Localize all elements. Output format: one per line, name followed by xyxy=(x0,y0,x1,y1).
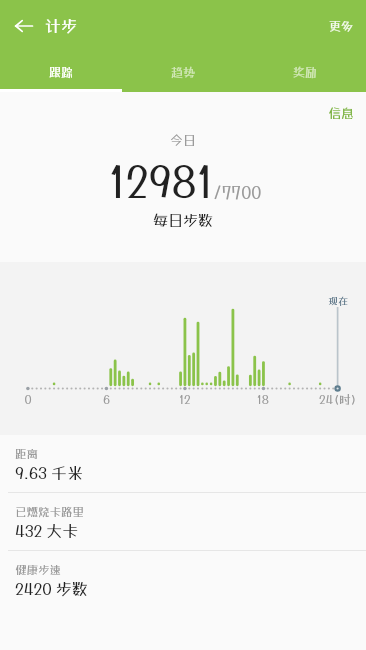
staticText: 24(时) xyxy=(319,392,357,406)
staticText: 信息 xyxy=(328,105,355,120)
staticText: 健康步速 xyxy=(15,563,61,577)
staticText: 奖励 xyxy=(293,65,318,79)
staticText: 432 大卡 xyxy=(15,521,79,540)
button[interactable]: 已燃烧卡路里 xyxy=(0,493,366,550)
button[interactable]: Back xyxy=(4,6,44,46)
button[interactable]: 趋势 xyxy=(122,51,244,92)
button[interactable]: 距离 xyxy=(0,435,366,492)
staticText: 每日步数 xyxy=(0,211,366,229)
staticText: 距离 xyxy=(15,447,38,461)
staticText: 12 xyxy=(179,392,191,406)
staticText: /7700 xyxy=(213,182,262,202)
staticText: 已燃烧卡路里 xyxy=(15,505,84,519)
staticText: 今日 xyxy=(0,132,366,147)
button[interactable]: 奖励 xyxy=(244,51,366,92)
staticText: 跟踪 xyxy=(49,65,74,79)
button[interactable]: 跟踪 xyxy=(0,51,122,92)
staticText: 6 xyxy=(103,392,110,406)
staticText: 趋势 xyxy=(171,65,196,79)
button[interactable]: 更多 xyxy=(313,7,366,45)
staticText: 9.63 千米 xyxy=(15,463,83,482)
button[interactable]: 信息 xyxy=(312,96,366,129)
staticText: 现在 xyxy=(328,295,348,307)
staticText: 18 xyxy=(257,392,269,406)
button[interactable]: 健康步速 xyxy=(0,551,366,608)
staticText: 计步 xyxy=(45,16,78,35)
staticText: 12981 xyxy=(109,157,214,207)
staticText: 0 xyxy=(24,392,32,406)
staticText: 更多 xyxy=(329,19,354,33)
staticText: 2420 步数 xyxy=(15,579,88,598)
